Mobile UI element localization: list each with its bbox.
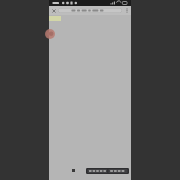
button[interactable] xyxy=(58,8,122,13)
button[interactable]: Avatar xyxy=(45,29,55,39)
button[interactable]: More options xyxy=(122,6,131,15)
button[interactable] xyxy=(86,168,129,174)
button[interactable]: Close xyxy=(49,6,58,15)
